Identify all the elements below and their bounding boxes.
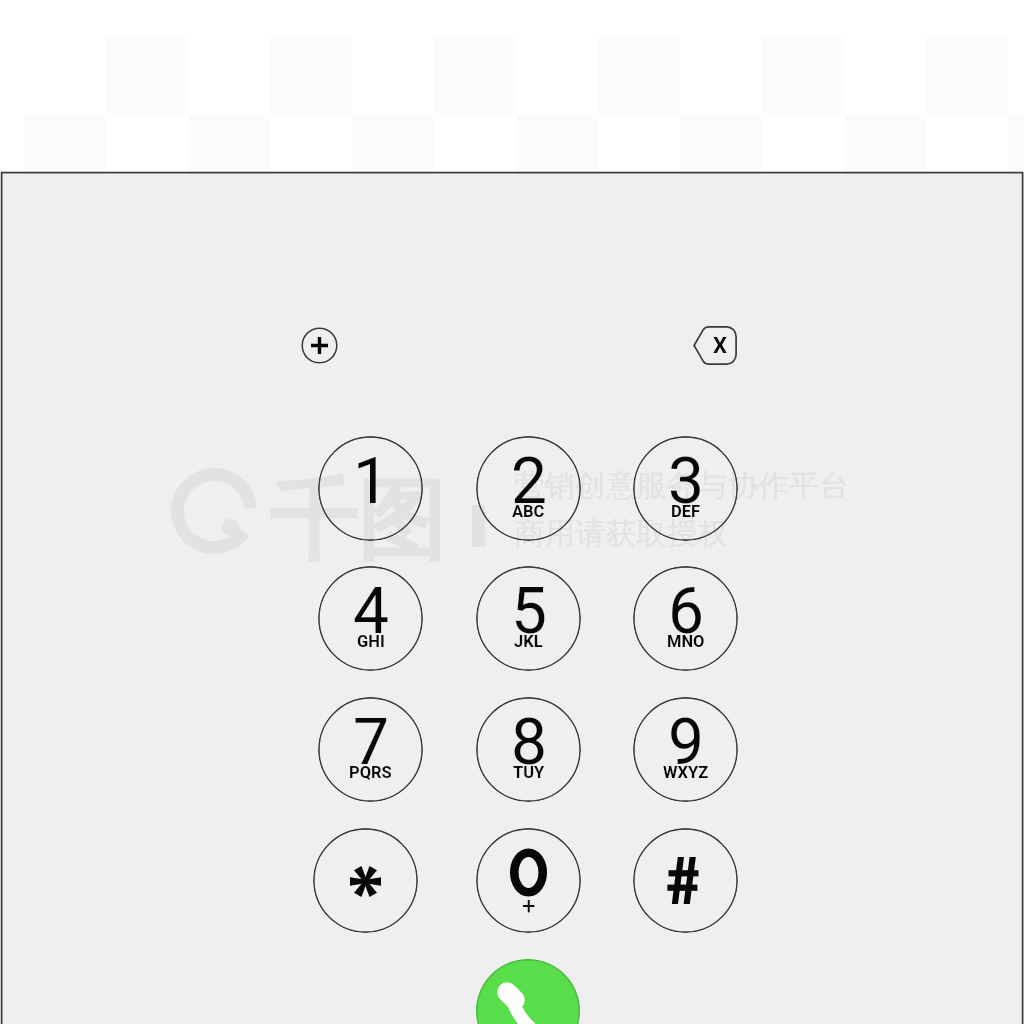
button[interactable]: 9: [633, 697, 738, 802]
staticText: 8: [511, 705, 547, 780]
button[interactable]: Call: [476, 959, 580, 1024]
staticText: 9: [668, 705, 704, 780]
staticText: +: [522, 892, 536, 920]
staticText: 4: [353, 574, 389, 649]
staticText: 6: [668, 574, 704, 649]
staticText: WXYZ: [663, 763, 709, 782]
button[interactable]: 8: [476, 697, 581, 802]
button[interactable]: Star: [313, 828, 418, 933]
button[interactable]: 6: [633, 566, 738, 671]
staticText: PQRS: [349, 763, 392, 782]
staticText: GHI: [357, 632, 385, 651]
button[interactable]: Zero plus: [476, 828, 581, 933]
staticText: ABC: [512, 502, 545, 521]
staticText: 千图: [269, 466, 445, 577]
button[interactable]: 5: [476, 566, 581, 671]
staticText: X: [713, 333, 727, 359]
button[interactable]: 1: [318, 436, 423, 541]
staticText: TUY: [513, 763, 545, 782]
button[interactable]: Add number: [301, 327, 338, 364]
staticText: MNO: [667, 632, 705, 651]
staticText: 营销创意服务与协作平台: [514, 467, 850, 505]
staticText: 3: [668, 444, 704, 519]
button[interactable]: 4: [318, 566, 423, 671]
staticText: DEF: [671, 502, 701, 521]
button[interactable]: 3: [633, 436, 738, 541]
button[interactable]: Backspace: [692, 326, 737, 365]
staticText: 2: [511, 444, 547, 519]
button[interactable]: Pound: [633, 828, 738, 933]
staticText: 1: [353, 444, 389, 519]
staticText: 7: [353, 705, 389, 780]
staticText: 5: [511, 574, 547, 649]
button[interactable]: 2: [476, 436, 581, 541]
staticText: 商用请获取授权: [514, 515, 728, 553]
button[interactable]: 7: [318, 697, 423, 802]
staticText: JKL: [514, 632, 543, 651]
